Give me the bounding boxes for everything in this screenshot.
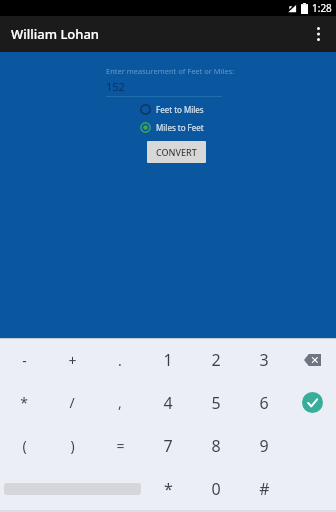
staticText: * — [20, 393, 28, 412]
staticText: 9 — [259, 435, 269, 457]
button[interactable]: Feet to Miles — [140, 104, 204, 115]
staticText: 0 — [211, 478, 221, 500]
button[interactable]: 0 — [192, 467, 240, 510]
staticText: 7 — [163, 435, 173, 457]
staticText: 2 — [211, 349, 221, 371]
staticText: / — [69, 393, 75, 412]
staticText: Miles to Feet — [156, 122, 204, 133]
button[interactable]: - — [0, 339, 48, 381]
staticText: CONVERT — [156, 146, 197, 158]
button[interactable]: Done — [288, 381, 336, 424]
button[interactable]: . — [96, 339, 144, 381]
staticText: 4 — [163, 392, 173, 414]
button[interactable]: ( — [0, 424, 48, 467]
button[interactable]: / — [48, 381, 96, 424]
button[interactable]: 3 — [240, 339, 288, 381]
button[interactable]: 1 — [144, 339, 192, 381]
staticText: 3 — [259, 349, 269, 371]
button[interactable]: More options — [300, 16, 336, 52]
staticText: William Lohan — [11, 25, 100, 43]
button[interactable]: , — [96, 381, 144, 424]
staticText: = — [116, 436, 125, 455]
staticText: 6 — [259, 392, 269, 414]
staticText: 5 — [211, 392, 221, 414]
button[interactable]: = — [96, 424, 144, 467]
button[interactable]: * — [0, 381, 48, 424]
staticText: ( — [22, 436, 27, 455]
staticText: 1:28 — [312, 1, 332, 15]
staticText: 8 — [211, 435, 221, 457]
staticText: ) — [70, 436, 75, 455]
button[interactable]: ) — [48, 424, 96, 467]
staticText: + — [68, 351, 77, 370]
staticText: # — [259, 478, 270, 500]
button[interactable]: CONVERT — [147, 141, 206, 163]
button[interactable]: 5 — [192, 381, 240, 424]
staticText: , — [118, 393, 122, 412]
button[interactable]: Miles to Feet — [140, 122, 204, 133]
button[interactable]: 6 — [240, 381, 288, 424]
button[interactable]: 2 — [192, 339, 240, 381]
button[interactable]: 8 — [192, 424, 240, 467]
staticText: Enter measurement of Feet or Miles: — [106, 66, 336, 76]
button[interactable]: Backspace — [288, 339, 336, 381]
staticText: . — [118, 351, 122, 370]
staticText: Feet to Miles — [156, 104, 204, 115]
button[interactable]: 4 — [144, 381, 192, 424]
staticText: 152 — [106, 79, 125, 94]
button[interactable]: 9 — [240, 424, 288, 467]
button[interactable]: * — [144, 467, 192, 510]
button[interactable]: Space — [0, 467, 144, 510]
button[interactable]: + — [48, 339, 96, 381]
button[interactable]: # — [240, 467, 288, 510]
staticText: 1 — [163, 349, 173, 371]
staticText: - — [22, 351, 27, 370]
button[interactable]: 7 — [144, 424, 192, 467]
staticText: * — [164, 478, 173, 500]
